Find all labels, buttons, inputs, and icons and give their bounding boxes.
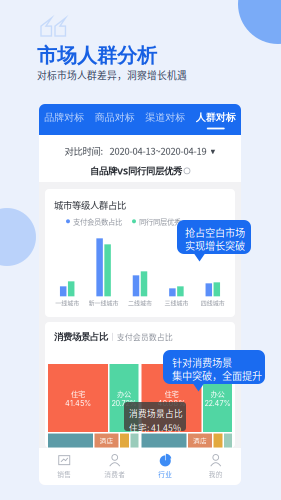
staticText: 市场人群分析 [37,43,157,68]
staticText: 一线城市 [55,298,79,307]
button[interactable]: 品牌对标 [39,104,89,135]
button[interactable]: 人群对标 [190,104,241,135]
button[interactable]: 渠道对标 [140,104,190,135]
button[interactable]: 商品对标 [89,104,140,135]
staticText: 行业 [158,469,172,479]
staticText: 住宅 [71,388,85,399]
staticText: 集中突破，全面提升 [172,368,262,383]
staticText: 消费场景占比 [129,407,183,419]
staticText: 住宅: 41.45% [129,421,181,434]
button[interactable]: 行业 [140,451,190,481]
staticText: 41.45% [65,399,91,408]
staticText: 支付会员数占比 [73,216,122,227]
staticText: 消费者 [104,469,125,479]
button[interactable]: 我的 [190,451,241,481]
staticText: 支付会员数占比 [117,331,173,343]
staticText: 酒店 [99,436,113,445]
staticText: 城市等级人群占比 [54,198,126,211]
staticText: 对比时间: 2020-04-13~2020-04-19 ▾ [64,144,215,157]
staticText: 对标市场人群差异，洞察增长机遇 [37,68,187,82]
staticText: 人群对标 [196,111,236,124]
staticText: 商品对标 [95,111,135,124]
staticText: 我的 [209,469,223,479]
staticText: 二线城市 [128,298,152,307]
staticText: 自品牌VS同行同层优秀 [90,164,182,177]
staticText: 针对消费场景 [172,355,232,370]
staticText: 四线城市 [201,298,225,307]
staticText: 酒店 [193,436,207,445]
staticText: 新一线城市 [89,298,119,307]
staticText: 品牌对标 [44,111,84,124]
staticText: 住宅 [164,388,178,399]
staticText: 抢占空白市场 [185,225,245,240]
staticText: 办公 [117,388,131,399]
staticText: 同行同层优秀 [139,216,181,227]
staticText: 消费场景占比 [54,331,108,343]
staticText: 22.47% [204,399,230,408]
staticText: 销售 [57,469,71,479]
staticText: 办公 [210,388,224,399]
button[interactable]: 销售 [39,451,89,481]
button[interactable]: 消费者 [89,451,140,481]
staticText: 实现增长突破 [185,238,245,253]
staticText: 三线城市 [164,298,188,307]
staticText: 20.72% [111,399,136,408]
staticText: 40.08% [157,399,185,408]
staticText: 渠道对标 [145,111,185,124]
